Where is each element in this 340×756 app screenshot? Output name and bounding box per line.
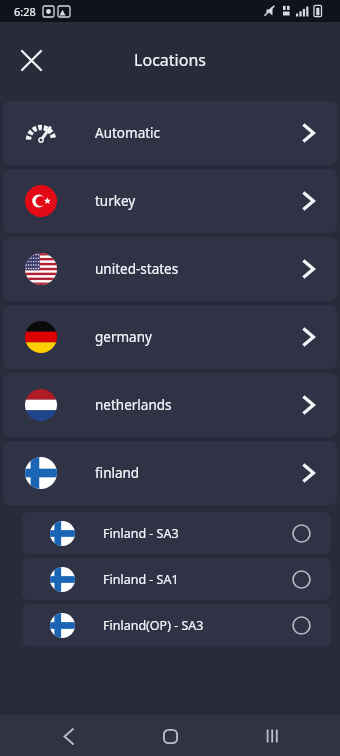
staticText: Finland - SA3 <box>103 525 179 542</box>
staticText: Finland - SA1 <box>103 571 179 588</box>
button[interactable]: netherlands <box>3 373 337 437</box>
button[interactable]: turkey <box>3 169 337 233</box>
staticText: finland <box>95 464 140 482</box>
button[interactable]: Close <box>9 38 53 82</box>
button[interactable]: Finland - SA1 <box>22 558 331 600</box>
button[interactable]: united-states <box>3 237 337 301</box>
button[interactable]: finland <box>3 441 337 505</box>
button[interactable]: Home <box>152 718 188 754</box>
staticText: netherlands <box>95 396 172 414</box>
button[interactable]: Recents <box>254 718 290 754</box>
staticText: united-states <box>95 260 179 278</box>
button[interactable]: germany <box>3 305 337 369</box>
staticText: germany <box>95 328 152 346</box>
button[interactable]: Automatic <box>3 101 337 165</box>
staticText: Finland(OP) - SA3 <box>103 617 204 634</box>
button[interactable]: Back <box>50 718 86 754</box>
button[interactable]: Finland - SA3 <box>22 512 331 554</box>
staticText: Automatic <box>95 124 161 142</box>
button[interactable]: Finland(OP) - SA3 <box>22 604 331 646</box>
staticText: Locations <box>134 49 206 71</box>
staticText: turkey <box>95 192 136 210</box>
staticText: 6:28 <box>14 4 36 19</box>
